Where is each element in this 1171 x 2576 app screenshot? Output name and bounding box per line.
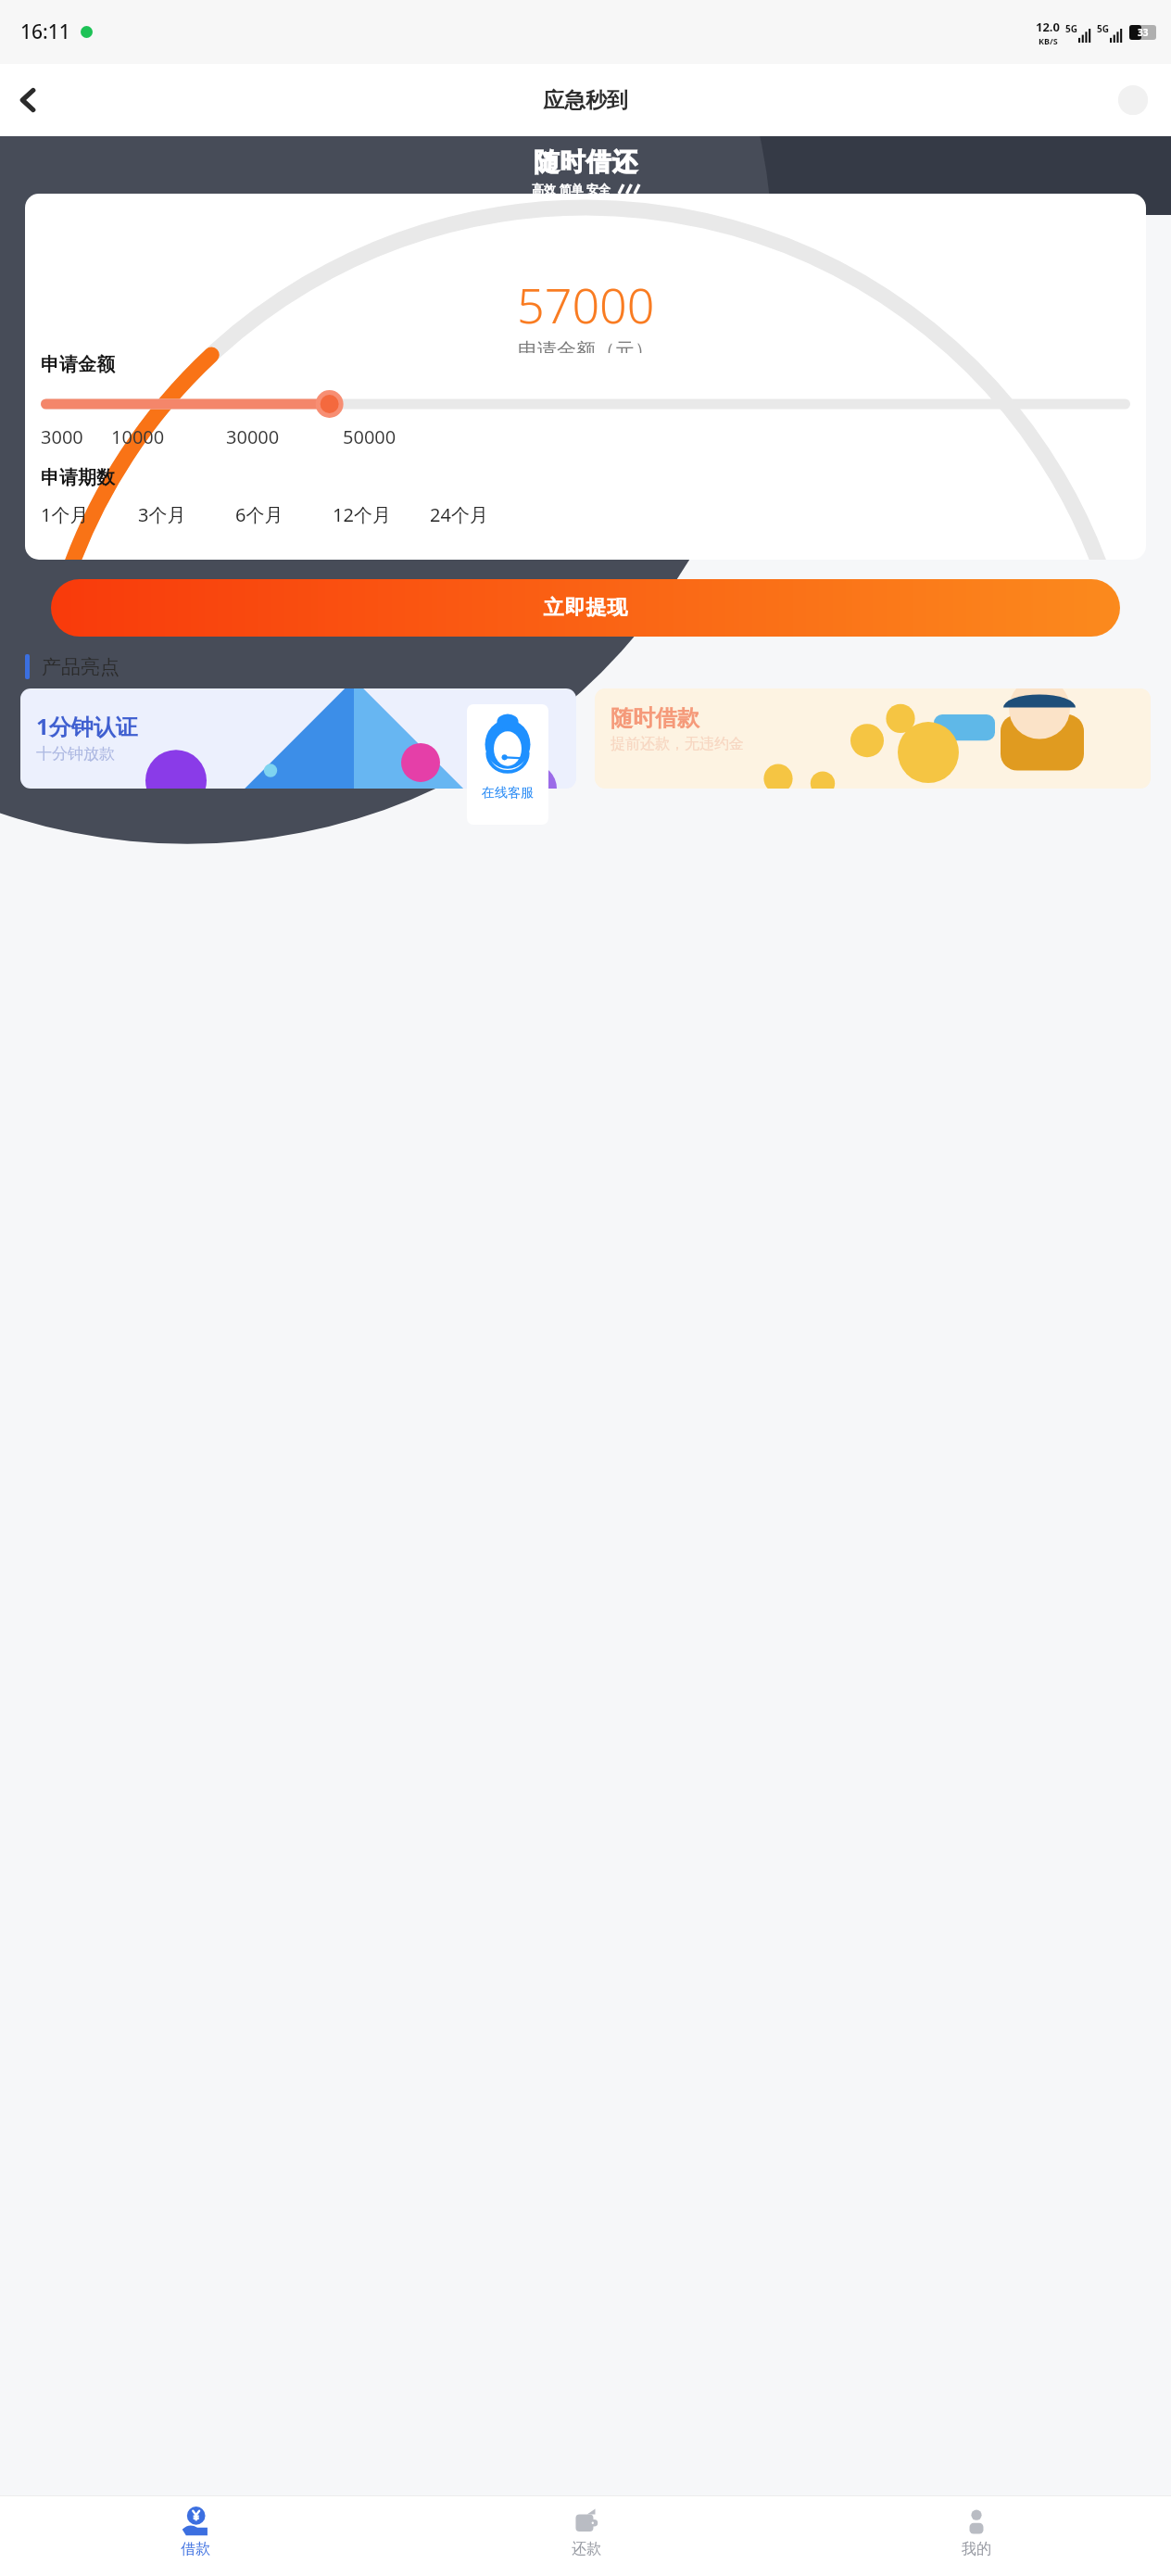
- staticText: 57000: [517, 271, 655, 337]
- staticText: 10000: [111, 424, 226, 449]
- button[interactable]: 1个月: [41, 502, 138, 526]
- button[interactable]: 24个月: [430, 502, 527, 526]
- button[interactable]: 还款: [391, 2496, 781, 2576]
- button[interactable]: Service: [1112, 79, 1154, 121]
- button[interactable]: 1分钟认证: [20, 688, 576, 789]
- staticText: 33: [1138, 26, 1149, 39]
- button[interactable]: 立即提现: [51, 579, 1120, 637]
- staticText: 高效 简单 安全: [532, 181, 611, 197]
- staticText: 50000: [343, 424, 397, 449]
- staticText: KB/S: [1039, 35, 1058, 46]
- button[interactable]: 借款: [0, 2496, 391, 2576]
- staticText: 申请金额: [41, 353, 115, 376]
- staticText: 1个月: [41, 502, 89, 526]
- staticText: 在线客服: [482, 785, 534, 802]
- staticText: 十分钟放款: [36, 744, 115, 764]
- staticText: 还款: [572, 2540, 601, 2558]
- staticText: 借款: [181, 2540, 210, 2558]
- staticText: 6个月: [235, 502, 283, 526]
- button[interactable]: 随时借款: [595, 688, 1151, 789]
- button[interactable]: 3个月: [138, 502, 235, 526]
- staticText: 申请金额（元）: [518, 338, 654, 353]
- staticText: 30000: [226, 424, 343, 449]
- staticText: 应急秒到: [543, 87, 628, 114]
- staticText: 我的: [962, 2540, 991, 2558]
- staticText: 5G: [1065, 22, 1077, 35]
- staticText: 立即提现: [543, 595, 628, 621]
- staticText: 12.0: [1036, 19, 1060, 35]
- staticText: 随时借还: [534, 146, 637, 178]
- staticText: 产品亮点: [42, 655, 120, 679]
- button[interactable]: 12个月: [333, 502, 430, 526]
- staticText: 16:11: [20, 19, 70, 45]
- staticText: 3000: [41, 424, 111, 449]
- staticText: 随时借款: [611, 704, 699, 732]
- button[interactable]: 我的: [781, 2496, 1171, 2576]
- staticText: 提前还款，无违约金: [611, 735, 744, 753]
- button[interactable]: [33, 389, 1138, 419]
- staticText: 申请期数: [41, 466, 115, 489]
- staticText: 12个月: [333, 502, 391, 526]
- staticText: 1分钟认证: [36, 711, 138, 741]
- staticText: 3个月: [138, 502, 186, 526]
- button[interactable]: 6个月: [235, 502, 333, 526]
- button[interactable]: 在线客服: [467, 704, 548, 825]
- staticText: 24个月: [430, 502, 488, 526]
- staticText: 5G: [1097, 22, 1109, 35]
- button[interactable]: Back: [4, 75, 54, 125]
